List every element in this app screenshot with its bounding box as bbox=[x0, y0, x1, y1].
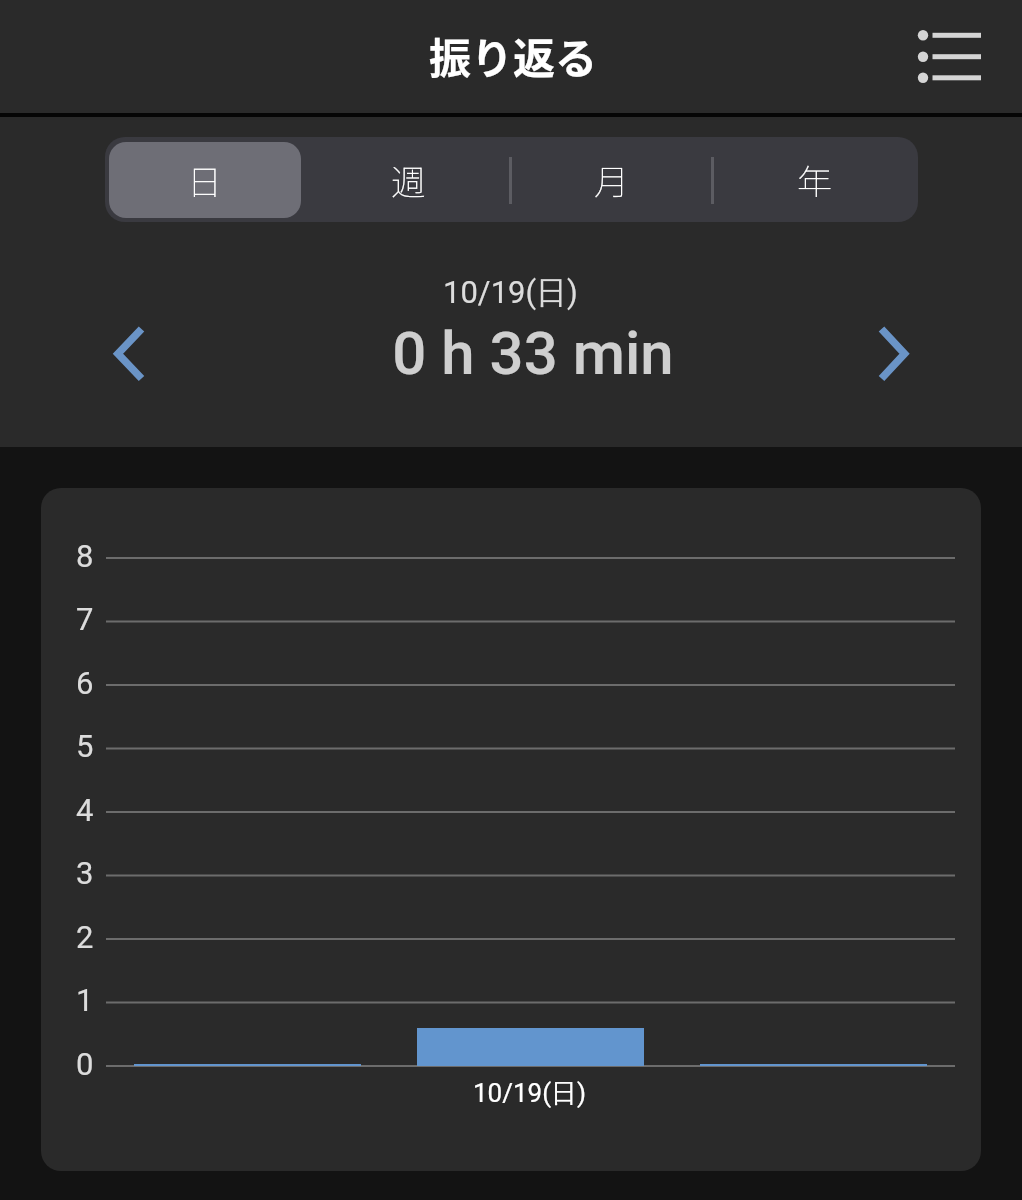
staticText: 6 bbox=[76, 665, 94, 701]
staticText: 10/19(日) bbox=[473, 1077, 587, 1110]
staticText: 週 bbox=[391, 154, 427, 205]
staticText: 3 bbox=[76, 855, 94, 891]
staticText: 8 bbox=[76, 538, 94, 574]
staticText: 10/19(日) bbox=[443, 273, 578, 312]
staticText: 5 bbox=[76, 728, 94, 764]
staticText: 年 bbox=[797, 154, 833, 205]
staticText: 日 bbox=[187, 154, 223, 205]
staticText: 4 bbox=[76, 792, 94, 828]
button[interactable]: Next day bbox=[851, 311, 937, 397]
staticText: 7 bbox=[76, 601, 94, 637]
staticText: 月 bbox=[594, 154, 630, 205]
button[interactable]: Previous day bbox=[85, 311, 171, 397]
staticText: 0 h 33 min bbox=[22, 318, 1022, 388]
staticText: 1 bbox=[76, 982, 94, 1018]
button[interactable]: List menu bbox=[890, 13, 1002, 101]
staticText: 0 bbox=[76, 1046, 94, 1082]
button[interactable]: 月 bbox=[510, 137, 713, 222]
button[interactable]: 年 bbox=[713, 137, 916, 222]
staticText: 2 bbox=[76, 919, 94, 955]
staticText: 振り返る bbox=[429, 25, 598, 86]
button[interactable]: 日 bbox=[105, 137, 307, 222]
button[interactable]: 週 bbox=[307, 137, 510, 222]
